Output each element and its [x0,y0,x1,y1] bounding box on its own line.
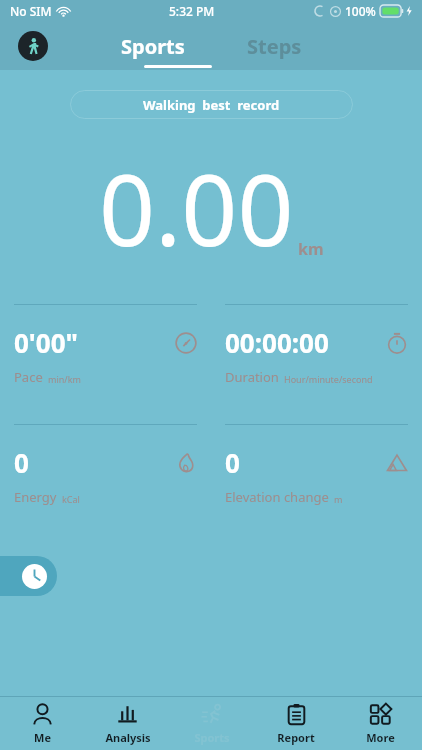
staticText: Hour/minute/second [284,373,373,385]
staticText: Duration [225,368,279,386]
staticText: Analysis [105,730,151,745]
staticText: Report [277,730,315,745]
staticText: Steps [247,33,302,60]
button[interactable]: More [338,697,422,750]
button[interactable]: Me [0,697,85,750]
staticText: 00:00:00 [225,325,329,360]
staticText: More [366,730,395,745]
staticText: km [298,238,324,260]
button[interactable]: Steps [229,27,320,66]
staticText: 0'00" [14,325,78,360]
button[interactable]: 0 [225,424,408,506]
staticText: No SIM [10,3,52,19]
staticText: 5:32 PM [169,3,215,19]
staticText: 100% [345,3,376,19]
staticText: 0 [225,445,240,480]
button[interactable]: Report [254,697,338,750]
staticText: m [334,493,343,505]
staticText: Elevation change [225,488,329,506]
staticText: Sports [194,730,230,745]
staticText: kCal [62,493,80,505]
button[interactable]: Walking best record [70,90,353,119]
button[interactable]: Analysis [85,697,170,750]
button[interactable]: 0'00" [14,304,197,386]
staticText: Walking best record [143,96,280,114]
button[interactable]: Sports [103,27,203,66]
button[interactable]: History [0,556,57,596]
staticText: Me [34,730,51,745]
staticText: min/km [48,373,81,385]
button[interactable]: 00:00:00 [225,304,408,386]
staticText: Energy [14,488,57,506]
button[interactable]: 0 [14,424,197,506]
staticText: Sports [121,33,185,60]
staticText: 0.00 [99,141,294,274]
staticText: Pace [14,368,43,386]
button[interactable]: Walking profile [18,31,48,61]
staticText: 0 [14,445,29,480]
